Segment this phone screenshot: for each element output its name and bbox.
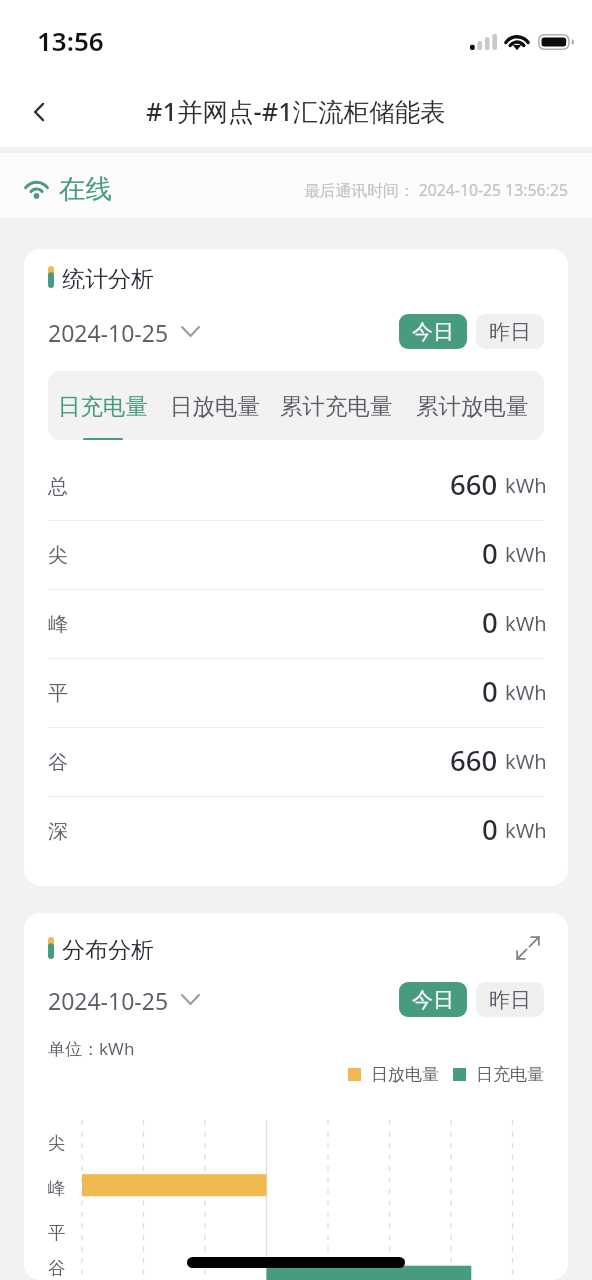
staticText: 谷 bbox=[48, 750, 68, 775]
staticText: 今日 bbox=[412, 987, 454, 1013]
staticText: 统计分析 bbox=[62, 265, 154, 289]
staticText: 累计放电量 bbox=[416, 392, 529, 420]
staticText: 谷 bbox=[48, 1257, 66, 1279]
button[interactable]: 日充电量 bbox=[48, 371, 157, 440]
staticText: 深 bbox=[48, 819, 68, 844]
staticText: kWh bbox=[505, 748, 547, 775]
staticText: 日放电量 bbox=[371, 1064, 439, 1085]
staticText: 日充电量 bbox=[58, 392, 148, 420]
staticText: 0 bbox=[482, 535, 498, 572]
staticText: 最后通讯时间： 2024-10-25 13:56:25 bbox=[304, 179, 568, 201]
staticText: 总 bbox=[48, 474, 68, 499]
staticText: 2024-10-25 bbox=[48, 317, 169, 348]
button[interactable]: Back bbox=[18, 90, 62, 134]
staticText: 660 bbox=[450, 742, 498, 779]
button[interactable]: 累计充电量 bbox=[272, 371, 400, 440]
button[interactable]: 昨日 bbox=[476, 314, 544, 349]
staticText: 日充电量 bbox=[476, 1064, 544, 1085]
button[interactable]: 今日 bbox=[399, 982, 467, 1017]
staticText: 0 bbox=[482, 811, 498, 848]
button[interactable]: 2024-10-25 bbox=[48, 984, 199, 1015]
staticText: kWh bbox=[505, 610, 547, 637]
staticText: 今日 bbox=[412, 319, 454, 345]
staticText: kWh bbox=[505, 817, 547, 844]
staticText: 13:56 bbox=[37, 23, 104, 58]
staticText: 0 bbox=[482, 604, 498, 641]
staticText: 在线 bbox=[59, 172, 112, 205]
button[interactable]: 昨日 bbox=[476, 982, 544, 1017]
button[interactable]: 累计放电量 bbox=[400, 371, 544, 440]
staticText: 平 bbox=[48, 1222, 66, 1244]
staticText: kWh bbox=[505, 472, 547, 499]
staticText: 平 bbox=[48, 681, 68, 706]
staticText: 昨日 bbox=[489, 319, 531, 345]
staticText: kWh bbox=[505, 679, 547, 706]
staticText: 峰 bbox=[48, 1177, 66, 1199]
staticText: 0 bbox=[482, 673, 498, 710]
staticText: 峰 bbox=[48, 612, 68, 637]
staticText: 分布分析 bbox=[62, 936, 154, 960]
button[interactable]: 今日 bbox=[399, 314, 467, 349]
staticText: 单位：kWh bbox=[48, 1037, 135, 1060]
staticText: 昨日 bbox=[489, 987, 531, 1013]
staticText: 尖 bbox=[48, 543, 68, 568]
staticText: 660 bbox=[450, 466, 498, 503]
button[interactable]: Expand bbox=[512, 936, 544, 960]
staticText: 累计充电量 bbox=[280, 392, 393, 420]
staticText: kWh bbox=[505, 541, 547, 568]
staticText: 日放电量 bbox=[170, 392, 260, 420]
staticText: 尖 bbox=[48, 1132, 66, 1154]
staticText: 2024-10-25 bbox=[48, 985, 169, 1016]
button[interactable]: 日放电量 bbox=[157, 371, 272, 440]
staticText: #1并网点-#1汇流柜储能表 bbox=[146, 94, 446, 129]
button[interactable]: 2024-10-25 bbox=[48, 316, 199, 347]
